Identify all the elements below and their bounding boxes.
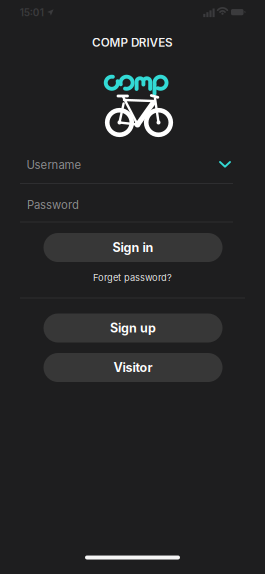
button[interactable]: Sign up [43,313,222,342]
staticText: Visitor [113,360,152,375]
staticText: Username [26,158,81,172]
staticText: 15:01 [20,6,44,19]
staticText: Forget password? [93,272,172,283]
button[interactable]: Visitor [43,353,222,382]
staticText: Sign in [112,240,153,255]
staticText: Sign up [110,320,156,335]
staticText: Password [27,198,79,212]
button[interactable]: Password [20,190,245,220]
button[interactable]: Username [20,150,245,180]
staticText: COMP DRIVES [92,35,173,50]
button[interactable]: Sign in [43,233,222,262]
button[interactable]: Forget password? [72,269,192,285]
